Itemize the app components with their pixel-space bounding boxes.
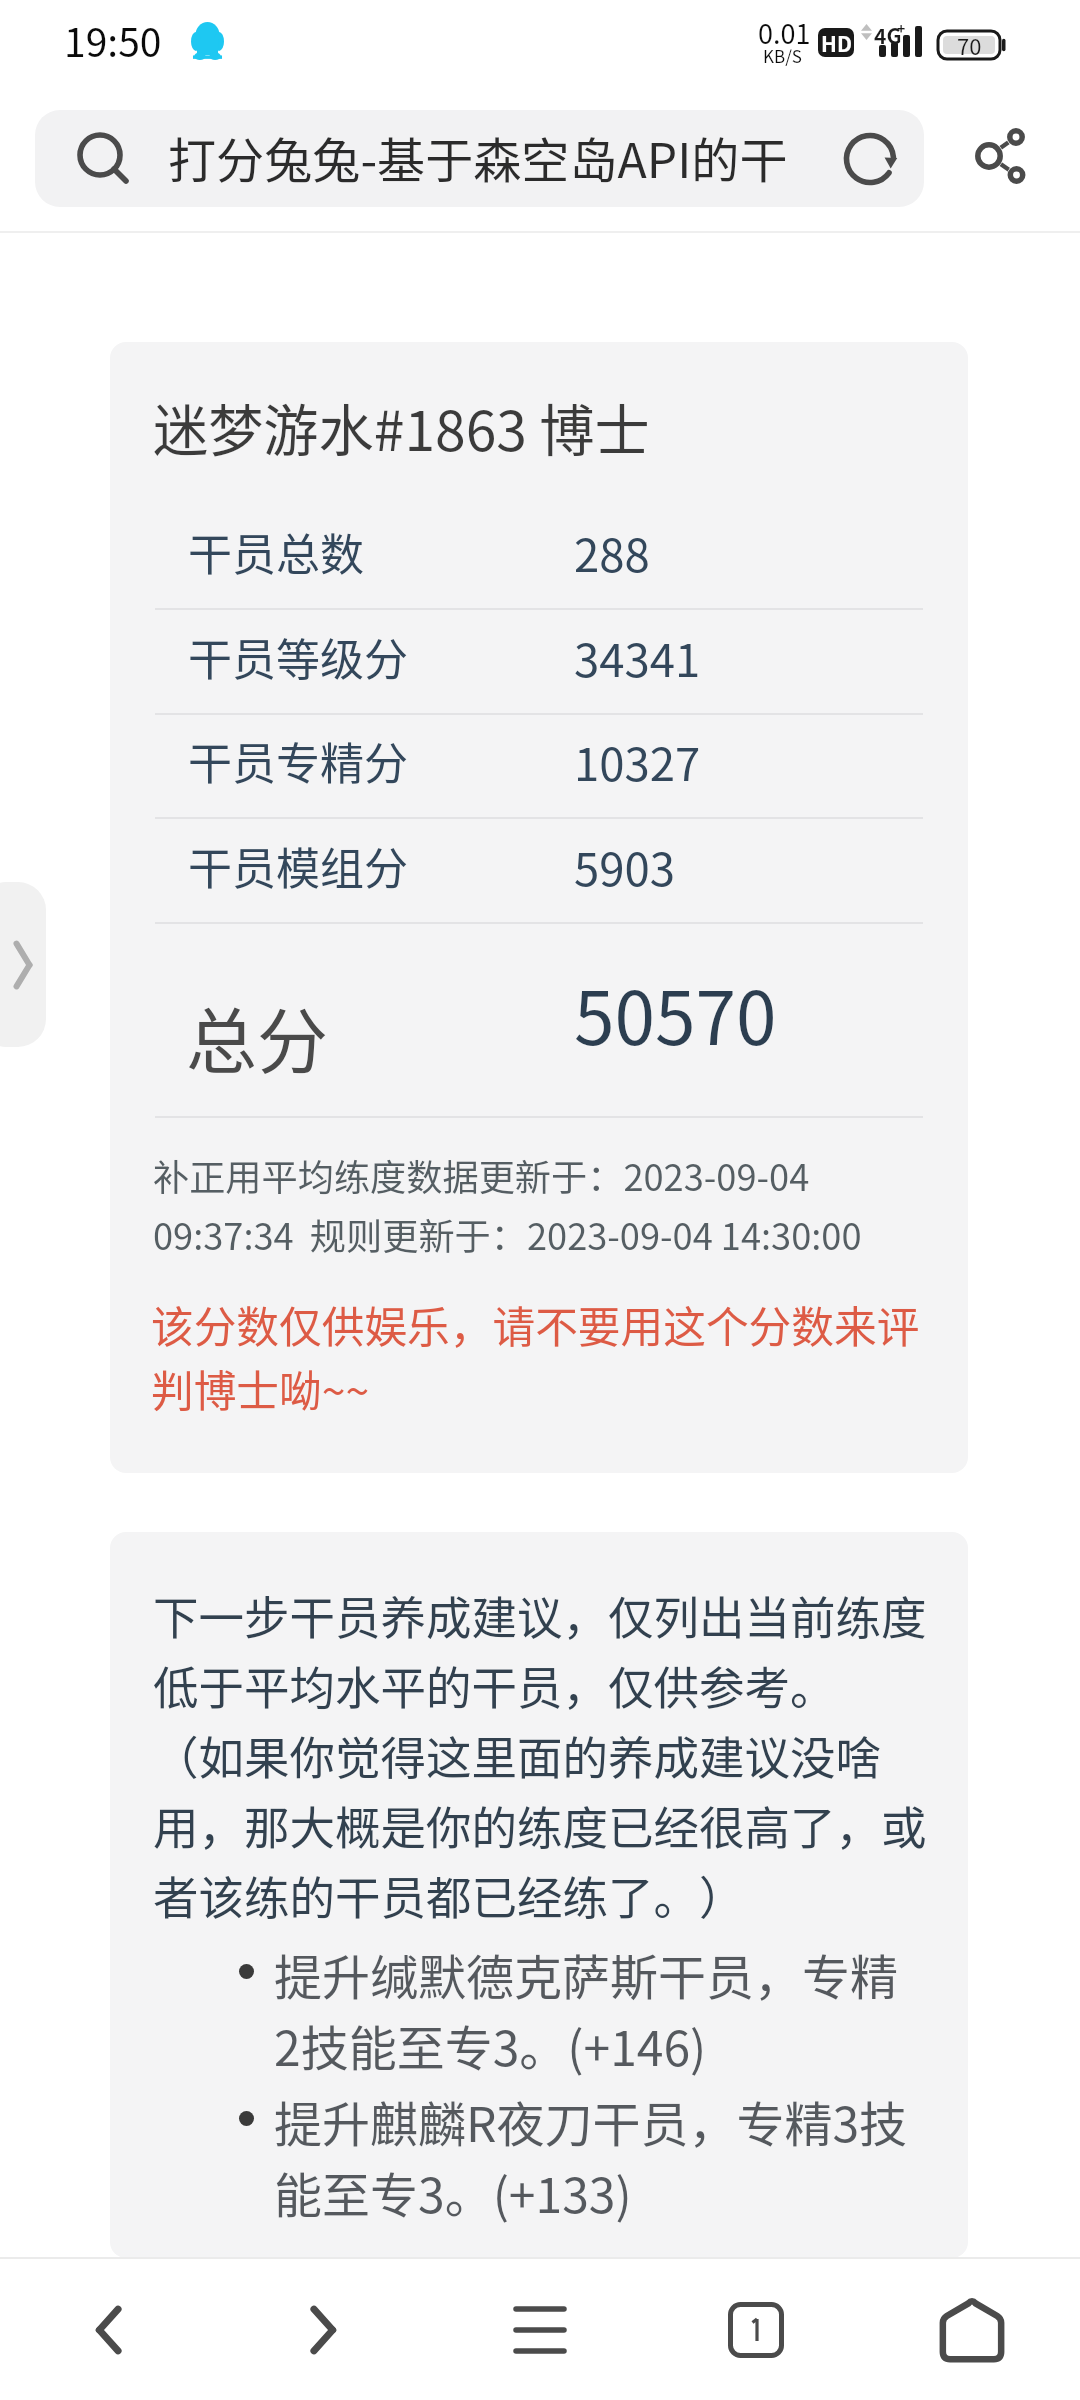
staticText: 提升缄默德克萨斯干员，专精2技能至专3。(+146) (274, 1939, 914, 2080)
staticText: 补正用平均练度数据更新于：2023-09-04 09:37:34 规则更新于：2… (153, 1149, 948, 1261)
button[interactable]: Home (864, 2259, 1080, 2400)
staticText: 干员模组分 (188, 834, 408, 898)
staticText: 提升麒麟R夜刀干员，专精3技能至专3。(+133) (274, 2086, 914, 2227)
staticText: 干员专精分 (188, 729, 408, 793)
staticText: KB/S (763, 43, 802, 68)
staticText: 该分数仅供娱乐，请不要用这个分数来评判博士呦~~ (151, 1293, 939, 1419)
button[interactable]: Menu (432, 2259, 648, 2400)
button[interactable]: Tabs (648, 2259, 864, 2400)
staticText: 70 (957, 29, 982, 61)
button[interactable]: Open panel (0, 882, 46, 1047)
staticText: 5903 (574, 833, 676, 899)
staticText: 50570 (574, 960, 777, 1066)
staticText: 10327 (574, 728, 701, 794)
button[interactable]: Refresh (815, 110, 924, 207)
button[interactable]: Forward (216, 2259, 432, 2400)
staticText: 4G (874, 20, 902, 50)
staticText: 34341 (574, 624, 701, 690)
staticText: HD (821, 28, 852, 57)
button[interactable]: Share (944, 102, 1056, 214)
staticText: 0.01 (758, 13, 811, 52)
staticText: 288 (574, 519, 650, 585)
staticText: 下一步干员养成建议，仅列出当前练度低于平均水平的干员，仅供参考。 （如果你觉得这… (153, 1582, 943, 1928)
staticText: 干员总数 (188, 520, 364, 584)
staticText: + (897, 18, 906, 38)
staticText: 打分兔兔-基于森空岛API的干 (168, 122, 788, 192)
staticText: 总分 (186, 985, 329, 1088)
staticText: 迷梦游水#1863 博士 (153, 387, 650, 467)
button[interactable]: 打分兔兔-基于森空岛API的干 (35, 110, 924, 207)
staticText: 19:50 (64, 12, 162, 68)
button[interactable]: Back (0, 2259, 216, 2400)
staticText: 干员等级分 (188, 625, 408, 689)
